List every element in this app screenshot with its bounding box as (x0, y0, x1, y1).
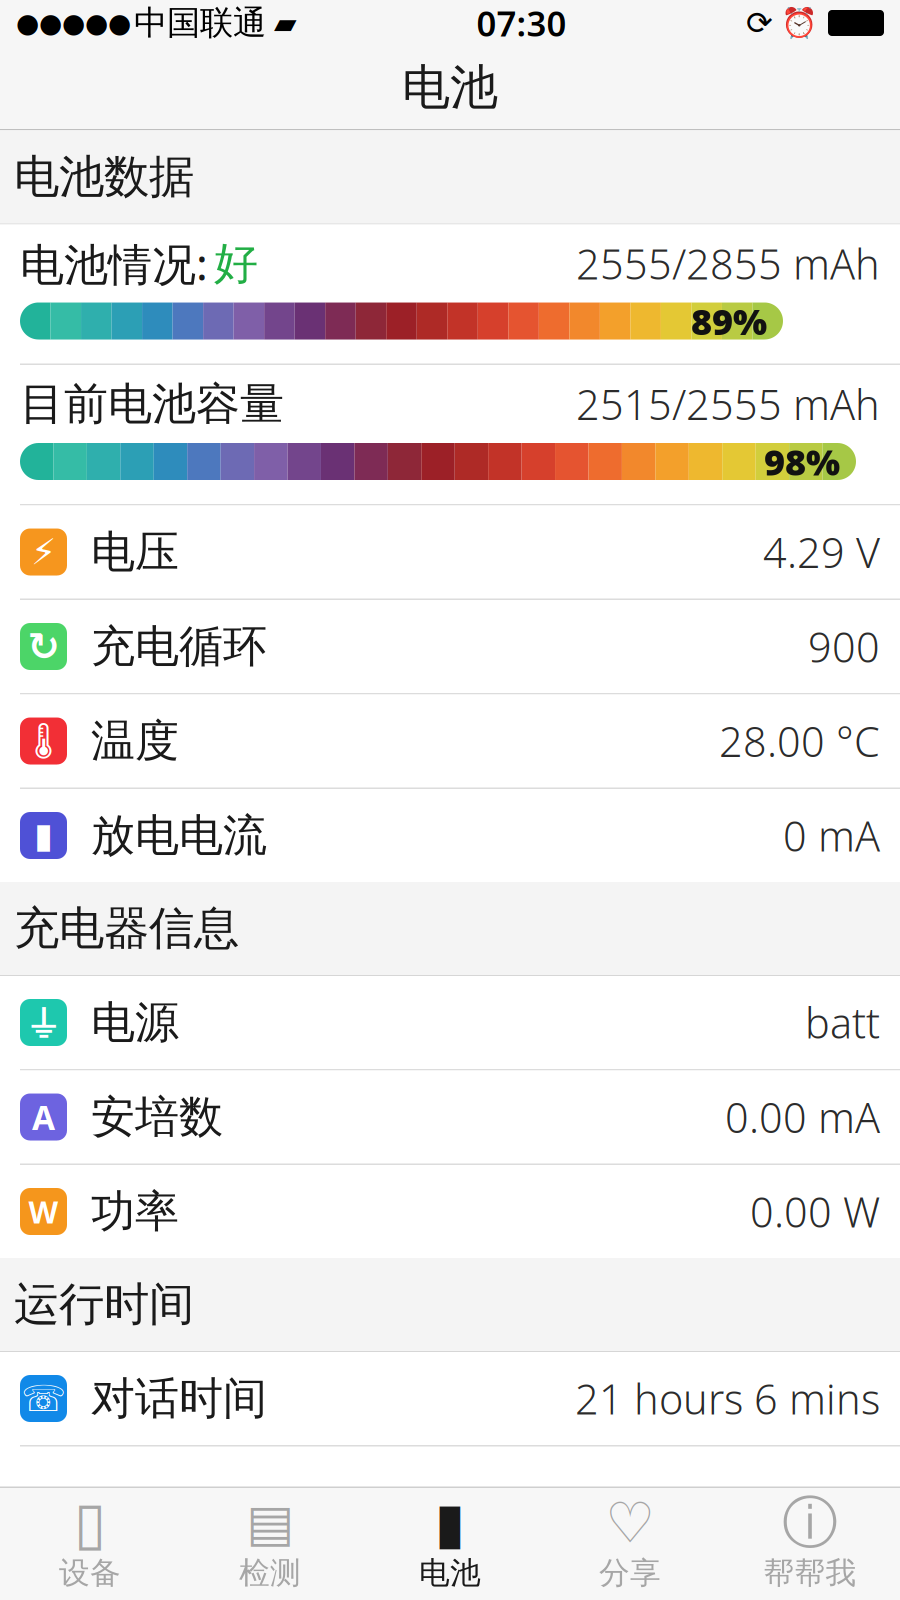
staticText: 分享 (599, 1554, 661, 1592)
button[interactable]: ⏚ (0, 976, 900, 1069)
staticText: batt (805, 995, 880, 1050)
button[interactable]: ♡ (540, 1488, 720, 1600)
staticText: ▮ (434, 1491, 465, 1555)
staticText: 2515/2555 mAh (576, 377, 880, 431)
staticText: ♡ (605, 1491, 655, 1555)
button[interactable]: ▤ (180, 1488, 360, 1600)
staticText: 电池 (402, 58, 498, 117)
staticText: 0.00 mA (725, 1090, 880, 1144)
staticText: 电源 (91, 995, 179, 1049)
staticText: 🌡 (21, 721, 65, 761)
button[interactable]: A (0, 1070, 900, 1163)
staticText: 电池情况: (20, 234, 208, 293)
button[interactable]: ☏ (0, 1352, 900, 1445)
button[interactable]: ⓘ (720, 1488, 900, 1600)
staticText: 2555/2855 mAh (576, 236, 880, 291)
staticText: 电压 (91, 525, 179, 579)
staticText: W (28, 1191, 58, 1232)
staticText: 07:30 (476, 0, 566, 46)
staticText: 0.00 W (750, 1184, 880, 1239)
staticText: 900 (808, 619, 880, 674)
staticText: 温度 (91, 714, 179, 768)
staticText: ⟳ (746, 5, 773, 41)
staticText: 4.29 V (763, 525, 880, 579)
staticText: ⏚ (25, 1001, 62, 1044)
staticText: 28.00 °C (719, 714, 880, 768)
staticText: 电池数据 (14, 149, 194, 205)
staticText: 安培数 (91, 1090, 223, 1144)
button[interactable]: ▯ (0, 1488, 180, 1600)
staticText: 帮帮我 (763, 1554, 856, 1592)
staticText: 98% (764, 438, 840, 485)
staticText: 21 hours 6 mins (575, 1371, 880, 1426)
staticText: ▮ (34, 816, 53, 855)
staticText: ⏰ (781, 6, 818, 40)
staticText: ●●●●● (16, 8, 131, 38)
button[interactable]: W (0, 1165, 900, 1258)
staticText: 功率 (91, 1184, 179, 1238)
staticText: A (32, 1095, 55, 1139)
staticText: 充电循环 (91, 619, 267, 673)
button[interactable]: ↻ (0, 600, 900, 693)
staticText: ⚡︎ (31, 532, 56, 572)
staticText: ☏ (21, 1378, 66, 1419)
staticText: 89% (691, 297, 767, 345)
staticText: 运行时间 (14, 1277, 194, 1332)
button[interactable]: 🌡 (0, 694, 900, 787)
staticText: 放电电流 (91, 808, 267, 862)
staticText: 设备 (59, 1554, 121, 1592)
staticText: 好 (214, 236, 258, 290)
staticText: 目前电池容量 (20, 377, 284, 431)
staticText: 充电器信息 (14, 901, 239, 956)
staticText: ⓘ (782, 1489, 838, 1558)
staticText: 对话时间 (91, 1371, 267, 1425)
button[interactable]: ▮ (360, 1488, 540, 1600)
staticText: ▯ (74, 1490, 106, 1556)
staticText: ↻ (27, 625, 59, 668)
staticText: ▤ (246, 1494, 294, 1552)
staticText: 中国联通 (134, 2, 266, 43)
staticText: 电池 (419, 1554, 481, 1592)
button[interactable]: ⚡︎ (0, 505, 900, 598)
staticText: 检测 (239, 1554, 301, 1592)
button[interactable]: ▮ (0, 789, 900, 882)
staticText: 0 mA (783, 808, 880, 863)
staticText: ▰ (274, 6, 297, 40)
